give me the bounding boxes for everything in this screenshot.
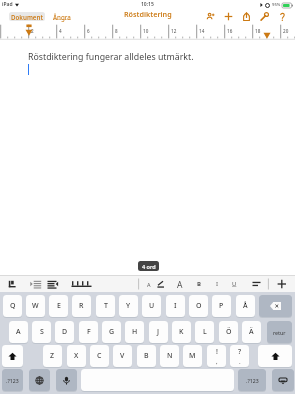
- button[interactable]: retur: [267, 321, 292, 343]
- button[interactable]: Ö: [219, 321, 238, 343]
- button[interactable]: Dictate: [56, 369, 77, 391]
- staticText: Y: [126, 301, 131, 311]
- staticText: K: [179, 327, 184, 337]
- button[interactable]: I: [166, 295, 185, 317]
- button[interactable]: L: [195, 321, 214, 343]
- staticText: Ångra: [53, 13, 71, 21]
- button[interactable]: E: [49, 295, 68, 317]
- staticText: A: [147, 281, 151, 288]
- button[interactable]: U: [142, 295, 161, 317]
- staticText: O: [196, 301, 202, 311]
- button[interactable]: Collaborate: [205, 11, 215, 21]
- staticText: R: [79, 301, 84, 311]
- button[interactable]: Help: [277, 11, 287, 21]
- button[interactable]: V: [113, 345, 132, 367]
- staticText: W: [32, 301, 39, 311]
- button[interactable]: A: [9, 321, 28, 343]
- staticText: L: [203, 327, 207, 337]
- staticText: Röstdiktering: [124, 9, 172, 19]
- staticText: 2: [31, 28, 34, 34]
- button[interactable]: F: [79, 321, 98, 343]
- button[interactable]: K: [172, 321, 191, 343]
- button[interactable]: Ångra: [53, 13, 71, 21]
- staticText: .: [239, 358, 241, 366]
- button[interactable]: D: [55, 321, 74, 343]
- staticText: A: [177, 279, 183, 291]
- staticText: D: [62, 327, 68, 337]
- staticText: G: [109, 327, 115, 337]
- staticText: X: [74, 351, 79, 361]
- staticText: U: [232, 280, 237, 288]
- button[interactable]: Shift: [258, 345, 292, 367]
- button[interactable]: Å: [236, 295, 255, 317]
- button[interactable]: Shift: [2, 345, 23, 367]
- staticText: B: [197, 280, 201, 288]
- button[interactable]: H: [125, 321, 144, 343]
- button[interactable]: Share: [241, 11, 251, 21]
- staticText: Z: [50, 351, 55, 361]
- button[interactable]: S: [32, 321, 51, 343]
- staticText: Q: [10, 301, 16, 311]
- staticText: I: [174, 301, 177, 311]
- staticText: E: [57, 301, 61, 311]
- staticText: 4: [59, 28, 62, 34]
- button[interactable]: C: [90, 345, 109, 367]
- staticText: 10: [143, 28, 149, 34]
- button[interactable]: 4 ord: [138, 261, 159, 271]
- staticText: C: [97, 351, 102, 361]
- staticText: Å: [243, 301, 248, 311]
- staticText: P: [219, 301, 224, 311]
- button[interactable]: Q: [3, 295, 22, 317]
- button[interactable]: R: [72, 295, 91, 317]
- button[interactable]: Ä: [242, 321, 261, 343]
- staticText: M: [189, 351, 196, 361]
- button[interactable]: Dokument: [9, 12, 45, 21]
- staticText: S: [40, 327, 44, 337]
- staticText: !: [216, 347, 218, 357]
- staticText: 4 ord: [142, 263, 156, 270]
- button[interactable]: M: [183, 345, 202, 367]
- button[interactable]: O: [189, 295, 208, 317]
- button[interactable]: Format: [259, 11, 269, 21]
- button[interactable]: W: [26, 295, 45, 317]
- staticText: 12: [171, 28, 177, 34]
- button[interactable]: N: [160, 345, 179, 367]
- staticText: F: [87, 327, 91, 337]
- staticText: 18: [255, 28, 261, 34]
- staticText: 95%: [272, 2, 281, 8]
- staticText: A: [16, 327, 21, 337]
- staticText: I: [216, 280, 219, 288]
- staticText: ,: [216, 358, 218, 366]
- staticText: 10:15: [141, 1, 154, 8]
- button[interactable]: Backspace: [259, 295, 292, 317]
- button[interactable]: P: [212, 295, 231, 317]
- button[interactable]: Change keyboard: [29, 369, 50, 391]
- staticText: 20: [283, 28, 289, 34]
- staticText: iPad: [2, 1, 13, 8]
- button[interactable]: J: [149, 321, 168, 343]
- button[interactable]: !: [207, 345, 226, 367]
- staticText: V: [120, 351, 125, 361]
- staticText: Dokument: [11, 13, 43, 21]
- staticText: retur: [273, 329, 286, 336]
- staticText: 6: [87, 28, 90, 34]
- button[interactable]: G: [102, 321, 121, 343]
- button[interactable]: .?123: [2, 369, 23, 391]
- button[interactable]: Z: [43, 345, 62, 367]
- button[interactable]: .?123: [238, 369, 266, 391]
- staticText: Ä: [249, 327, 254, 337]
- button[interactable]: Hide keyboard: [272, 369, 294, 391]
- button[interactable]: Add: [223, 11, 233, 21]
- staticText: T: [104, 301, 108, 311]
- staticText: J: [157, 327, 160, 337]
- button[interactable]: T: [96, 295, 115, 317]
- button[interactable]: B: [137, 345, 156, 367]
- staticText: U: [149, 301, 155, 311]
- staticText: ?: [238, 347, 242, 357]
- staticText: B: [144, 351, 149, 361]
- button[interactable]: Y: [119, 295, 138, 317]
- button[interactable]: ?: [230, 345, 249, 367]
- button[interactable]: X: [67, 345, 86, 367]
- staticText: 16: [227, 28, 233, 34]
